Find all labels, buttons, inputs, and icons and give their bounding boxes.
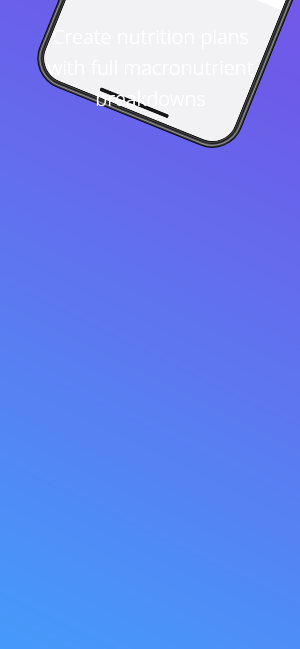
staticText: Create nutrition plans with full macronu… [47, 23, 254, 112]
button[interactable]: App preview on phone [28, 0, 300, 157]
button[interactable]: Create nutrition plans with full macronu… [8, 23, 292, 112]
